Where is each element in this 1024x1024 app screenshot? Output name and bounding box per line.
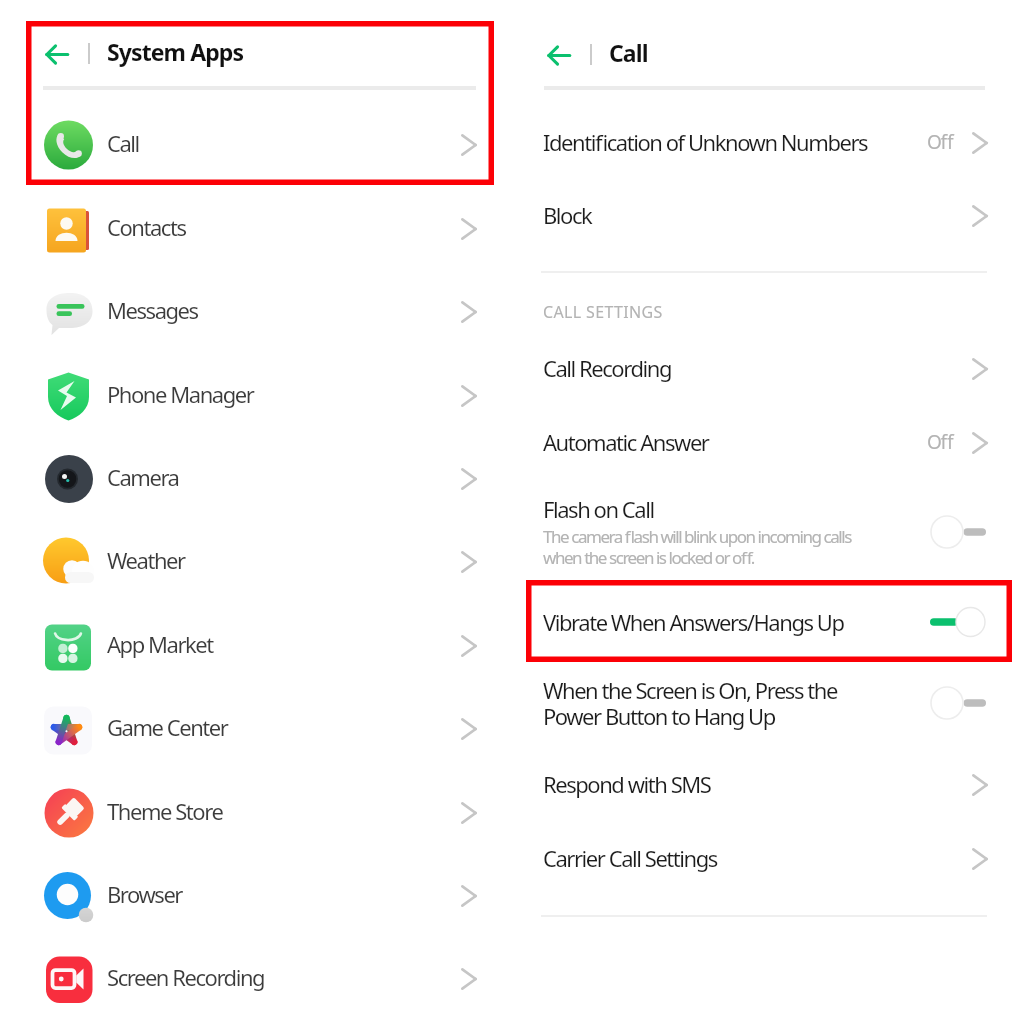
staticText: Call	[609, 37, 648, 68]
button[interactable]: Theme Store	[0, 771, 512, 854]
staticText: Call	[107, 128, 139, 158]
staticText: Identification of Unknown Numbers	[543, 127, 868, 157]
staticText: Off	[927, 429, 953, 455]
staticText: App Market	[107, 629, 213, 659]
button[interactable]: Automatic Answer	[512, 406, 1024, 480]
button[interactable]: Call Recording	[512, 332, 1024, 406]
staticText: Game Center	[107, 712, 228, 742]
staticText: Power Button to Hang Up	[543, 701, 775, 731]
button[interactable]: Switch off	[929, 686, 987, 720]
staticText: Browser	[107, 879, 182, 909]
button[interactable]: Phone Manager	[0, 354, 512, 437]
staticText: CALL SETTINGS	[543, 301, 663, 323]
button[interactable]: When the Screen is On, Press the	[512, 654, 1024, 744]
staticText: Contacts	[107, 212, 186, 242]
button[interactable]: Contacts	[0, 187, 512, 270]
button[interactable]: Screen Recording	[0, 937, 512, 1020]
button[interactable]: Flash on Call	[512, 473, 1024, 547]
button[interactable]: Back	[34, 31, 80, 77]
staticText: Weather	[107, 545, 185, 575]
button[interactable]: Switch on	[929, 605, 987, 639]
staticText: Vibrate When Answers/Hangs Up	[543, 607, 844, 637]
staticText: Call Recording	[543, 353, 671, 383]
staticText: Messages	[107, 295, 198, 325]
button[interactable]: Switch off	[929, 515, 987, 549]
button[interactable]: Block	[512, 179, 1024, 253]
button[interactable]: Respond with SMS	[512, 748, 1024, 822]
staticText: Automatic Answer	[543, 427, 709, 457]
staticText: Camera	[107, 462, 179, 492]
button[interactable]: Browser	[0, 854, 512, 937]
staticText: when the screen is locked or off.	[543, 546, 754, 569]
staticText: Off	[927, 129, 953, 155]
button[interactable]: Identification of Unknown Numbers	[512, 106, 1024, 180]
staticText: Carrier Call Settings	[543, 843, 717, 873]
staticText: Flash on Call	[543, 494, 654, 524]
button[interactable]: Carrier Call Settings	[512, 822, 1024, 896]
staticText: System Apps	[107, 36, 244, 67]
staticText: Theme Store	[107, 796, 223, 826]
staticText: Phone Manager	[107, 379, 254, 409]
button[interactable]: Messages	[0, 270, 512, 353]
staticText: Screen Recording	[107, 962, 265, 992]
button[interactable]: App Market	[0, 604, 512, 687]
staticText: Block	[543, 200, 592, 230]
button[interactable]: Vibrate When Answers/Hangs Up	[512, 586, 1024, 660]
button[interactable]: Back	[536, 32, 582, 78]
staticText: Respond with SMS	[543, 769, 711, 799]
button[interactable]: Camera	[0, 437, 512, 520]
button[interactable]: Call	[0, 103, 512, 186]
staticText: The camera flash will blink upon incomin…	[543, 525, 851, 548]
button[interactable]: Game Center	[0, 687, 512, 770]
button[interactable]: Weather	[0, 520, 512, 603]
staticText: When the Screen is On, Press the	[543, 675, 837, 705]
